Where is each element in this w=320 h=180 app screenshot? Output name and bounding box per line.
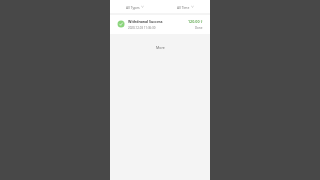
- button[interactable]: All Types: [110, 0, 160, 13]
- staticText: All Time: [177, 5, 190, 9]
- button[interactable]: Success: [110, 15, 210, 34]
- staticText: More: [156, 45, 165, 50]
- staticText: Withdrawal Success: [128, 19, 163, 24]
- staticText: 2020-12-03 11:36:30: [128, 26, 156, 30]
- staticText: 120.00 ₹: [188, 19, 203, 24]
- staticText: All Types: [126, 5, 140, 9]
- button[interactable]: More: [150, 44, 171, 51]
- staticText: Done: [195, 26, 203, 30]
- button[interactable]: All Time: [160, 0, 210, 13]
- other: Success: [116, 20, 125, 29]
